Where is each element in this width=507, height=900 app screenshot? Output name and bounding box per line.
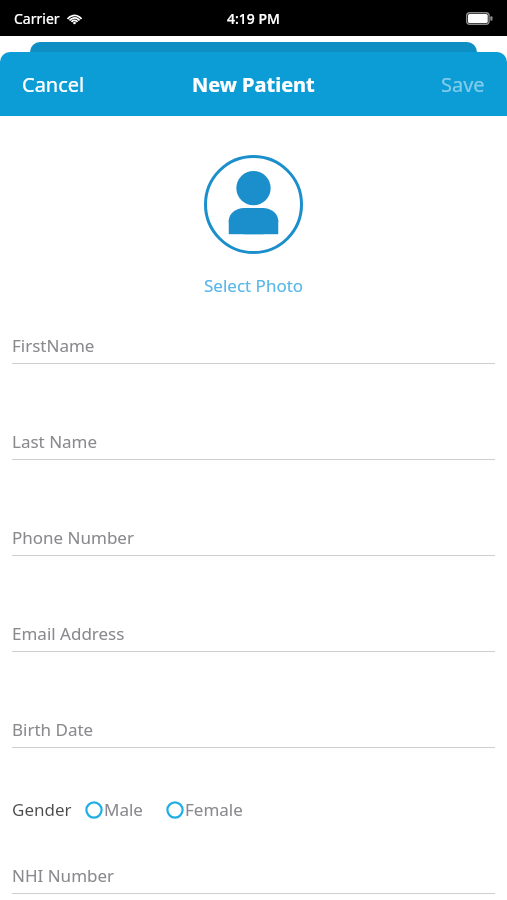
button[interactable]: NHI Number	[0, 864, 507, 894]
button[interactable]: Cancel	[0, 63, 101, 106]
staticText: Gender	[12, 798, 72, 821]
staticText: Email Address	[12, 622, 125, 645]
button[interactable]: Save	[425, 63, 507, 106]
button[interactable]: Male	[85, 794, 143, 825]
button[interactable]: Last Name	[0, 430, 507, 460]
staticText: Save	[441, 71, 485, 98]
staticText: 4:19 PM	[227, 9, 280, 28]
staticText: NHI Number	[12, 864, 115, 887]
button[interactable]: Female	[166, 794, 243, 825]
staticText: Carrier	[14, 9, 60, 28]
staticText: Female	[185, 798, 243, 821]
staticText: Male	[104, 798, 143, 821]
staticText: FirstName	[12, 334, 95, 357]
button[interactable]: Email Address	[0, 622, 507, 652]
staticText: Cancel	[22, 71, 85, 98]
staticText: Select Photo	[204, 274, 304, 297]
button[interactable]: Phone Number	[0, 526, 507, 556]
staticText: Last Name	[12, 430, 98, 453]
staticText: New Patient	[192, 71, 315, 98]
button[interactable]: Select Photo	[196, 272, 312, 299]
staticText: Birth Date	[12, 718, 94, 741]
button[interactable]: FirstName	[0, 334, 507, 364]
button[interactable]: Select profile photo	[204, 155, 303, 254]
button[interactable]: Birth Date	[0, 718, 507, 748]
staticText: Phone Number	[12, 526, 134, 549]
